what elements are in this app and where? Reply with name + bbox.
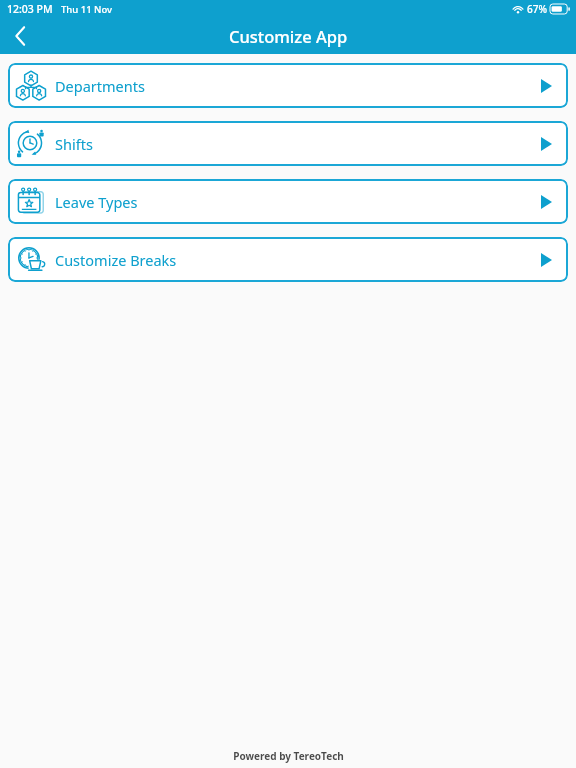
- staticText: Thu 11 Nov: [61, 3, 113, 16]
- staticText: Powered by TereoTech: [233, 749, 344, 763]
- staticText: 67%: [527, 2, 547, 16]
- button[interactable]: Customize Breaks: [8, 237, 568, 282]
- staticText: Customize App: [229, 25, 348, 47]
- staticText: 12:03 PM: [7, 2, 53, 16]
- staticText: Shifts: [55, 134, 93, 154]
- button[interactable]: Back: [0, 18, 40, 54]
- staticText: Customize Breaks: [55, 250, 177, 270]
- staticText: Leave Types: [55, 192, 138, 212]
- button[interactable]: Leave Types: [8, 179, 568, 224]
- button[interactable]: Departments: [8, 63, 568, 108]
- button[interactable]: Shifts: [8, 121, 568, 166]
- staticText: Departments: [55, 76, 145, 96]
